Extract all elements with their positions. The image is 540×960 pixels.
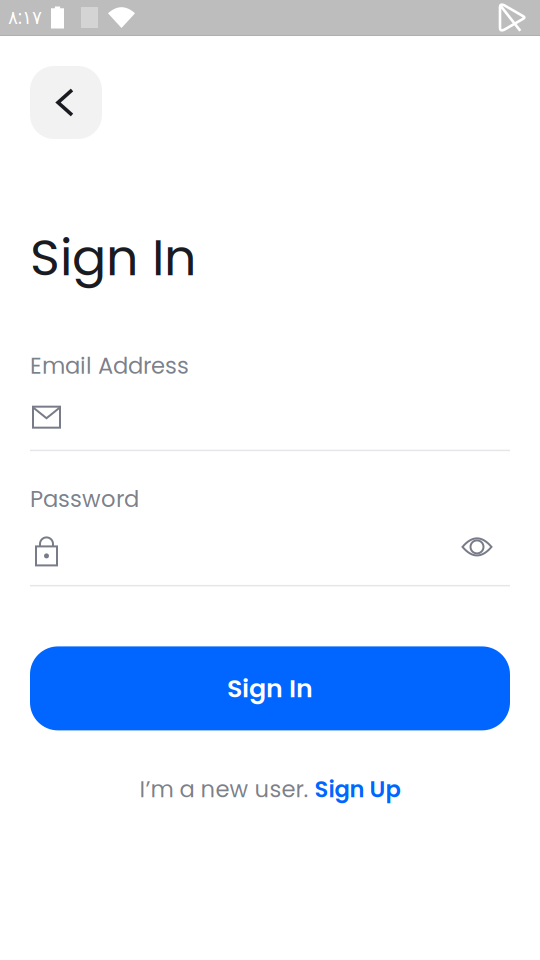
staticText: Sign Up <box>314 773 400 805</box>
staticText: Sign In <box>227 671 313 706</box>
button[interactable]: I’m a new user. <box>30 773 510 805</box>
staticText: Email Address <box>30 350 189 382</box>
button[interactable]: Back <box>30 66 102 139</box>
staticText: Password <box>30 483 139 515</box>
button[interactable]: Sign In <box>30 646 510 730</box>
staticText: Sign In <box>30 222 196 293</box>
staticText: ٨:١٧ <box>8 4 42 30</box>
button[interactable]: Show password <box>458 533 510 561</box>
staticText: I’m a new user. <box>139 773 314 805</box>
